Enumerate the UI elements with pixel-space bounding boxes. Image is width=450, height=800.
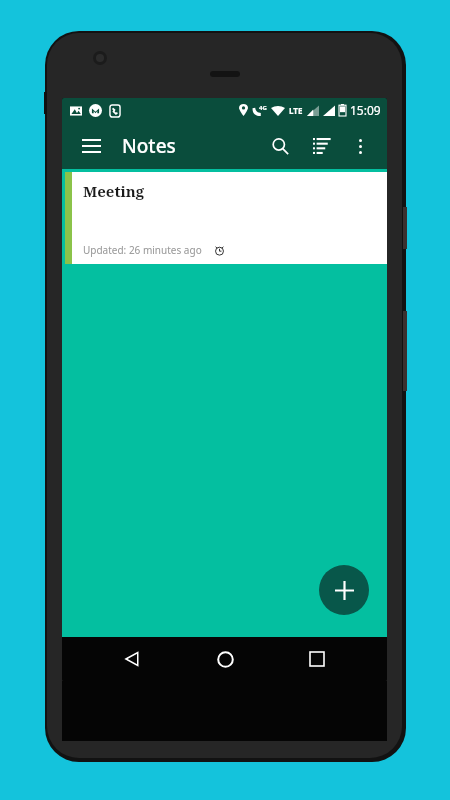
button[interactable]: Open navigation drawer — [72, 127, 110, 165]
button[interactable]: Back — [110, 637, 154, 681]
button[interactable]: Search — [261, 127, 299, 165]
button[interactable]: Recent apps — [295, 637, 339, 681]
button[interactable]: More options — [343, 129, 377, 163]
staticText: LTE — [289, 105, 303, 116]
button[interactable]: Sort — [303, 127, 341, 165]
staticText: Meeting — [83, 181, 145, 201]
staticText: Notes — [122, 133, 176, 159]
staticText: 4G — [259, 104, 267, 112]
button[interactable]: Meeting — [65, 172, 387, 264]
staticText: Updated: 26 minutes ago — [83, 243, 202, 257]
staticText: 15:09 — [350, 102, 381, 118]
button[interactable]: Home — [203, 637, 247, 681]
button[interactable]: Add note — [319, 565, 369, 615]
